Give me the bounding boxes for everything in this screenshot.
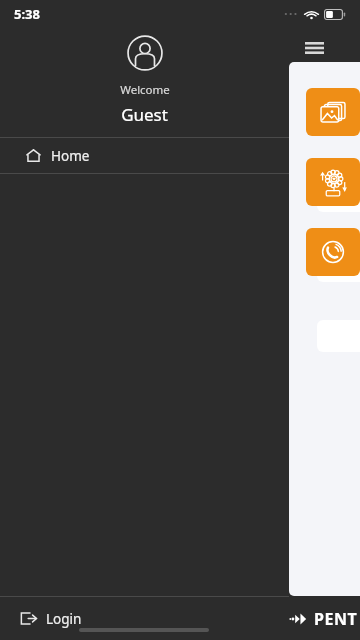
- staticText: Welcome: [120, 82, 170, 98]
- staticText: Home: [51, 147, 90, 165]
- button[interactable]: Home: [0, 138, 289, 173]
- staticText: Guest: [121, 103, 168, 126]
- button[interactable]: Tile: [306, 88, 360, 136]
- staticText: PENT: [314, 608, 358, 630]
- button[interactable]: Login: [0, 597, 289, 640]
- button[interactable]: Tile: [306, 158, 360, 206]
- staticText: 5:38: [14, 5, 40, 23]
- button[interactable]: Open navigation menu: [300, 34, 328, 62]
- button[interactable]: Tile: [306, 228, 360, 276]
- staticText: Login: [46, 610, 82, 628]
